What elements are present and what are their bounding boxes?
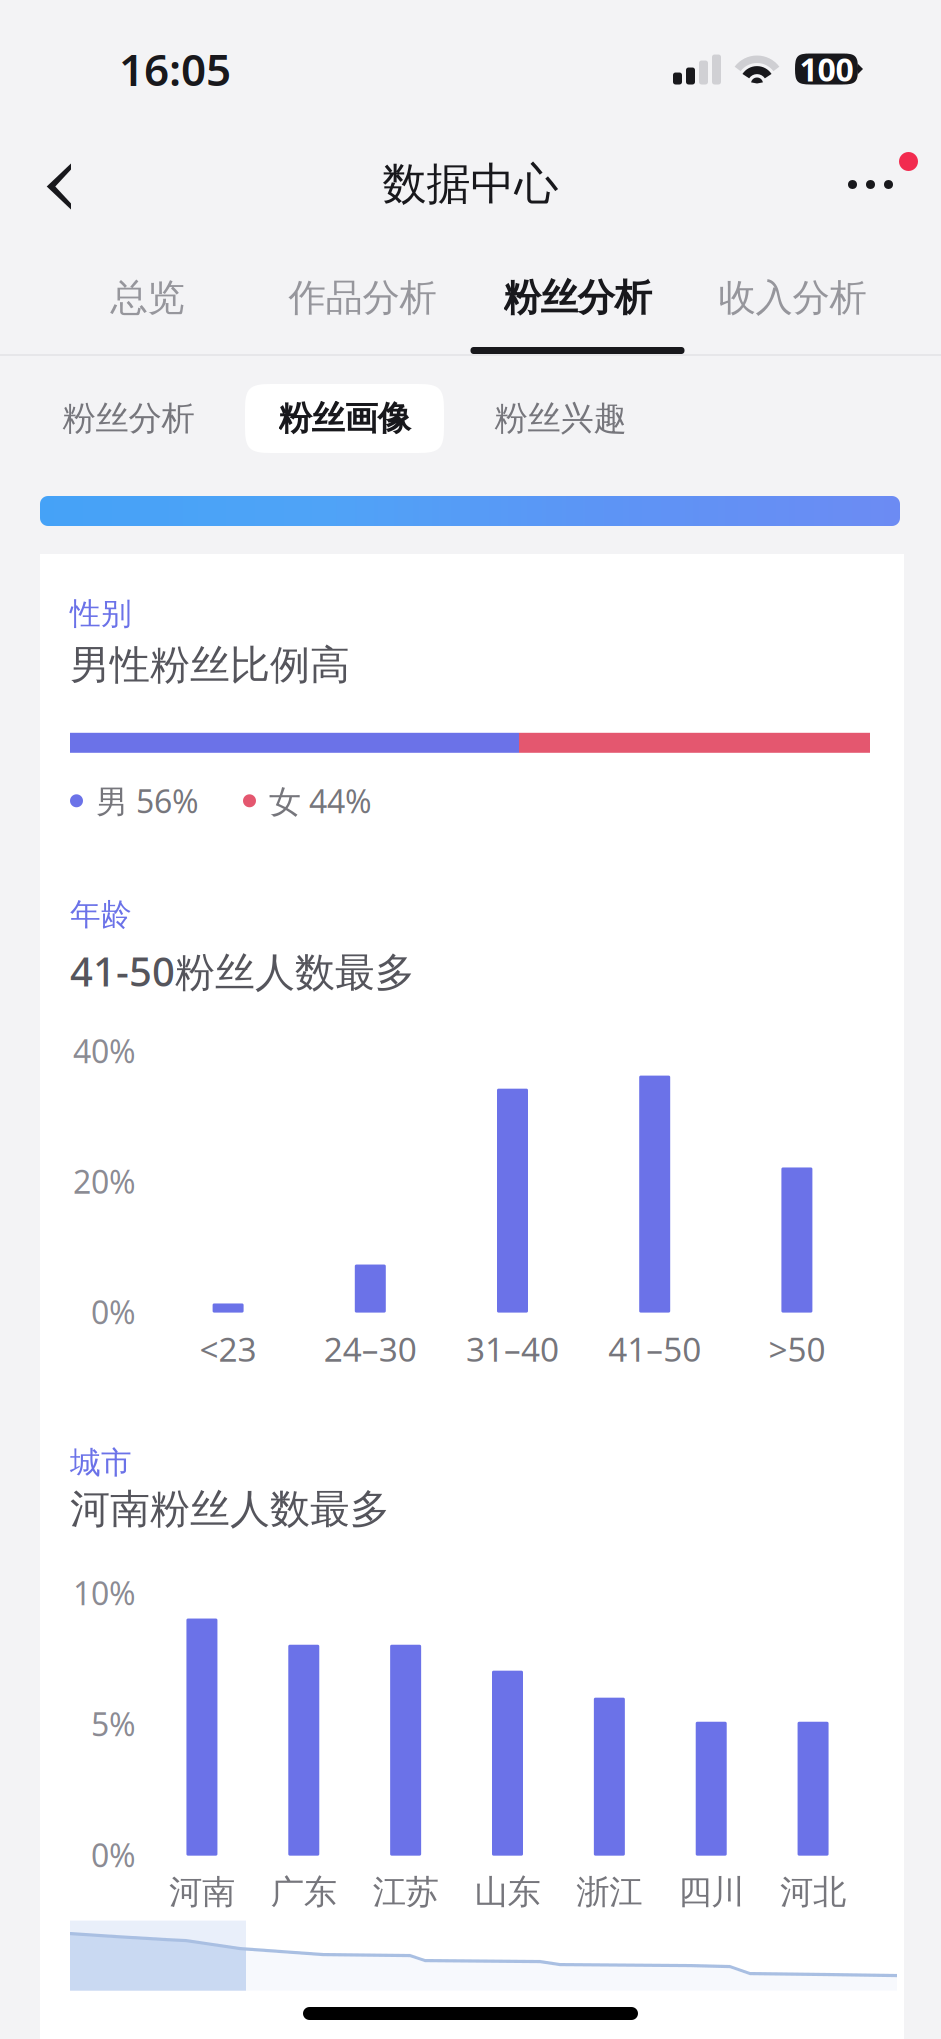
- staticText: 河北: [780, 1872, 846, 1912]
- staticText: 浙江: [576, 1872, 642, 1912]
- staticText: 作品分析: [288, 275, 436, 321]
- button[interactable]: 总览: [40, 231, 255, 354]
- staticText: 粉丝兴趣: [494, 398, 626, 439]
- staticText: 数据中心: [382, 157, 558, 211]
- staticText: 31–40: [466, 1327, 559, 1371]
- staticText: 粉丝分析: [503, 275, 651, 321]
- staticText: 20%: [73, 1160, 136, 1203]
- button[interactable]: 粉丝分析: [470, 231, 685, 354]
- staticText: 粉丝画像: [278, 398, 410, 439]
- staticText: 四川: [678, 1872, 744, 1912]
- button[interactable]: Back: [0, 138, 110, 229]
- staticText: 河南粉丝人数最多: [70, 1484, 390, 1534]
- staticText: <23: [200, 1327, 257, 1371]
- button[interactable]: More options: [848, 137, 941, 231]
- staticText: 粉丝分析: [62, 398, 194, 439]
- button[interactable]: 粉丝兴趣: [461, 384, 660, 453]
- staticText: 江苏: [373, 1872, 439, 1912]
- staticText: 城市: [70, 1444, 132, 1481]
- staticText: 广东: [271, 1872, 337, 1912]
- staticText: 5%: [91, 1703, 136, 1745]
- staticText: 41–50: [608, 1327, 701, 1371]
- staticText: 男 56%: [96, 780, 199, 822]
- staticText: 10%: [73, 1572, 136, 1614]
- staticText: 总览: [110, 275, 184, 321]
- button[interactable]: 粉丝画像: [245, 384, 444, 453]
- staticText: 100: [799, 48, 853, 90]
- staticText: 性别: [70, 595, 132, 633]
- staticText: 男性粉丝比例高: [70, 641, 350, 690]
- button[interactable]: 收入分析: [685, 231, 900, 354]
- staticText: 年龄: [70, 896, 132, 933]
- staticText: 女 44%: [269, 780, 372, 822]
- staticText: 16:05: [119, 40, 231, 98]
- staticText: 河南: [169, 1872, 235, 1912]
- staticText: 24–30: [324, 1327, 417, 1371]
- staticText: >50: [768, 1327, 825, 1371]
- staticText: 山东: [474, 1872, 540, 1912]
- staticText: 0%: [91, 1291, 136, 1333]
- staticText: 41-50粉丝人数最多: [70, 944, 415, 998]
- button[interactable]: 作品分析: [255, 231, 470, 354]
- button[interactable]: 粉丝分析: [29, 384, 228, 453]
- staticText: 收入分析: [718, 275, 866, 321]
- staticText: 0%: [91, 1834, 136, 1876]
- staticText: 40%: [73, 1030, 136, 1072]
